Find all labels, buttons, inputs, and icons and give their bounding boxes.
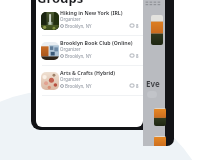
staticText: Organizer — [60, 76, 81, 82]
staticText: Brooklyn Book Club (Online) — [60, 39, 133, 46]
button[interactable]: Arts & Crafts (Hybrid) — [36, 66, 143, 96]
button[interactable]: Hiking in New York (IRL) — [36, 6, 143, 36]
staticText: Brooklyn, NY — [65, 83, 92, 89]
staticText: Brooklyn, NY — [65, 53, 92, 59]
button[interactable]: Brooklyn Book Club (Online) — [36, 36, 143, 66]
staticText: 8 — [136, 23, 139, 29]
staticText: Brooklyn, NY — [65, 23, 92, 29]
staticText: Hiking in New York (IRL) — [60, 9, 123, 16]
staticText: Organizer — [60, 16, 81, 22]
staticText: Arts & Crafts (Hybrid) — [60, 69, 116, 76]
staticText: 8 — [136, 53, 139, 59]
staticText: Groups — [37, 0, 84, 7]
staticText: Organizer — [60, 46, 81, 52]
staticText: 8 — [136, 83, 139, 89]
staticText: Eve — [146, 78, 160, 89]
